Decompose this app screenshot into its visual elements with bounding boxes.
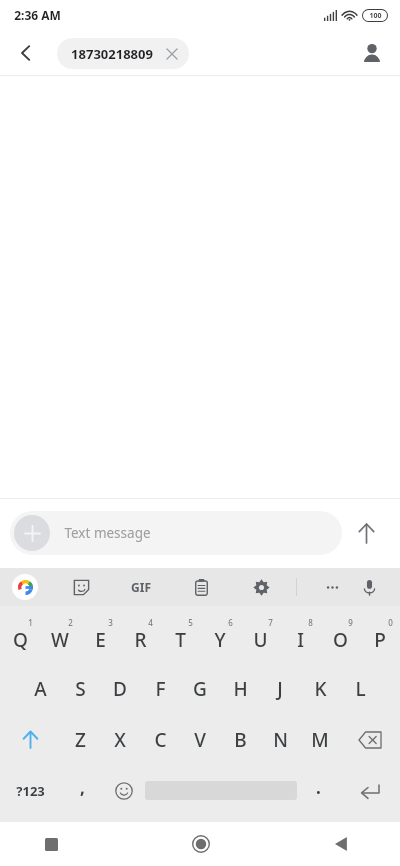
staticText: 18730218809 [71, 45, 153, 63]
button[interactable]: E [80, 612, 120, 663]
staticText: L [355, 676, 366, 702]
button[interactable]: Attach [10, 511, 342, 555]
button[interactable]: S [60, 663, 100, 714]
button[interactable]: X [100, 714, 140, 765]
button[interactable]: Stickers [68, 574, 94, 600]
staticText: , [80, 776, 85, 799]
staticText: 2:36 AM [14, 7, 61, 23]
staticText: 3 [108, 617, 113, 628]
button[interactable]: Z [60, 714, 100, 765]
button[interactable]: Voice input [356, 574, 382, 600]
button[interactable]: Clipboard [188, 574, 214, 600]
button[interactable]: Emoji [103, 765, 145, 816]
staticText: M [311, 727, 329, 753]
staticText: K [314, 676, 327, 702]
button[interactable]: I [280, 612, 320, 663]
staticText: O [333, 627, 348, 653]
staticText: X [114, 727, 126, 753]
button[interactable]: C [140, 714, 180, 765]
button[interactable]: ?123 [0, 765, 61, 816]
staticText: U [253, 627, 268, 653]
button[interactable]: D [100, 663, 140, 714]
button[interactable]: W [40, 612, 80, 663]
button[interactable]: A [20, 663, 60, 714]
staticText: Q [13, 627, 28, 653]
staticText: E [95, 627, 106, 653]
staticText: 6 [228, 617, 233, 628]
button[interactable]: Back [6, 33, 46, 73]
staticText: W [51, 627, 69, 653]
staticText: Y [214, 627, 226, 653]
button[interactable]: Settings [248, 574, 274, 600]
staticText: D [113, 676, 127, 702]
button[interactable]: . [297, 765, 339, 816]
button[interactable]: , [61, 765, 103, 816]
button[interactable]: F [140, 663, 180, 714]
button[interactable]: U [240, 612, 280, 663]
button[interactable]: Shift [0, 714, 60, 765]
button[interactable]: Backspace [340, 714, 400, 765]
button[interactable]: More options [319, 574, 345, 600]
staticText: 4 [148, 617, 153, 628]
button[interactable]: G [180, 663, 220, 714]
button[interactable]: R [120, 612, 160, 663]
button[interactable]: K [300, 663, 340, 714]
button[interactable]: B [220, 714, 260, 765]
button[interactable]: Q [0, 612, 40, 663]
staticText: 5 [188, 617, 193, 628]
button[interactable]: Contact details [352, 33, 392, 73]
staticText: 1 [28, 617, 33, 628]
button[interactable]: O [320, 612, 360, 663]
staticText: I [297, 627, 304, 653]
staticText: T [175, 627, 186, 653]
staticText: 9 [348, 617, 353, 628]
staticText: H [233, 676, 248, 702]
button[interactable]: Enter [339, 765, 400, 816]
button[interactable]: Attach [14, 515, 50, 551]
button[interactable]: J [260, 663, 300, 714]
staticText: C [154, 727, 167, 753]
staticText: ?123 [16, 782, 45, 800]
staticText: S [75, 676, 86, 702]
staticText: GIF [131, 579, 151, 595]
staticText: Z [75, 727, 86, 753]
staticText: 7 [268, 617, 273, 628]
staticText: 0 [388, 617, 393, 628]
button[interactable]: Google [12, 574, 38, 600]
staticText: F [155, 676, 166, 702]
button[interactable]: Send [342, 509, 390, 557]
staticText: . [316, 776, 321, 799]
staticText: A [34, 676, 47, 702]
button[interactable]: Recents [0, 822, 134, 866]
staticText: N [273, 727, 288, 753]
staticText: R [134, 627, 147, 653]
staticText: G [193, 676, 207, 702]
staticText: 2 [68, 617, 73, 628]
staticText: P [374, 627, 386, 653]
button[interactable]: N [260, 714, 300, 765]
button[interactable]: V [180, 714, 220, 765]
staticText: B [234, 727, 247, 753]
staticText: 100 [369, 11, 382, 21]
button[interactable]: Home [134, 822, 267, 866]
button[interactable]: GIF [128, 574, 154, 600]
button[interactable]: T [160, 612, 200, 663]
button[interactable]: M [300, 714, 340, 765]
button[interactable]: H [220, 663, 260, 714]
staticText: Text message [64, 524, 151, 542]
staticText: 8 [308, 617, 313, 628]
button[interactable]: L [340, 663, 380, 714]
staticText: V [194, 727, 206, 753]
button[interactable]: P [360, 612, 400, 663]
button[interactable]: Y [200, 612, 240, 663]
staticText: J [277, 676, 283, 702]
button[interactable]: 18730218809 [57, 38, 189, 69]
button[interactable]: Back [267, 822, 400, 866]
